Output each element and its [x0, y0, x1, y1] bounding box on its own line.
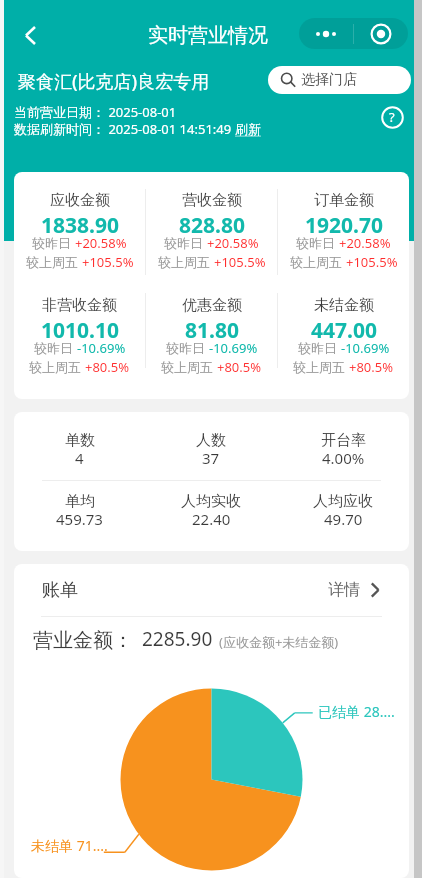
staticText: 人均应收 [313, 492, 373, 511]
staticText: 当前营业日期： 2025-08-01 [14, 103, 177, 121]
staticText: -10.69% [77, 339, 126, 357]
button[interactable]: 选择门店 [268, 66, 411, 94]
staticText: 较昨日 [298, 339, 341, 357]
staticText: 较上周五 [158, 253, 214, 271]
staticText: 已结单 28.... [318, 702, 395, 721]
staticText: +20.58% [339, 234, 391, 252]
button[interactable]: 刷新 [235, 121, 261, 137]
staticText: 828.80 [179, 211, 245, 240]
staticText: 人均实收 [181, 492, 241, 511]
staticText: 较昨日 [164, 234, 207, 252]
staticText: 选择门店 [301, 71, 357, 89]
staticText: 账单 [42, 579, 78, 601]
staticText: ? [389, 108, 395, 126]
button[interactable]: 人均应收 [277, 492, 409, 531]
staticText: 人数 [196, 431, 226, 450]
staticText: 1010.10 [41, 316, 119, 345]
staticText: 22.40 [192, 509, 231, 529]
staticText: 81.80 [185, 316, 239, 345]
staticText: 聚食汇(比克店)良宏专用 [18, 69, 210, 94]
staticText: 营业金额： [33, 628, 133, 653]
staticText: 单数 [65, 431, 95, 450]
staticText: 单均 [65, 492, 95, 511]
staticText: -10.69% [209, 339, 258, 357]
staticText: +80.5% [217, 358, 262, 376]
staticText: 1920.70 [305, 211, 383, 240]
staticText: 优惠金额 [182, 296, 242, 315]
staticText: 数据刷新时间： 2025-08-01 14:51:49 [14, 120, 235, 138]
staticText: 较昨日 [296, 234, 339, 252]
button[interactable]: 优惠金额 [146, 277, 277, 382]
staticText: +105.5% [214, 253, 266, 271]
button[interactable]: 开台率 [277, 431, 409, 470]
staticText: 37 [202, 448, 220, 468]
staticText: 应收金额 [50, 191, 110, 210]
button[interactable]: 人均实收 [145, 492, 277, 531]
button[interactable]: 详情 [328, 580, 383, 600]
staticText: 较昨日 [166, 339, 209, 357]
staticText: 较昨日 [32, 234, 75, 252]
button[interactable]: More options [299, 18, 353, 49]
staticText: 未结金额 [314, 296, 374, 315]
staticText: +80.5% [349, 358, 394, 376]
staticText: 实时营业情况 [148, 23, 268, 48]
staticText: +20.58% [207, 234, 259, 252]
staticText: 较上周五 [26, 253, 82, 271]
button[interactable]: Back [12, 18, 47, 53]
staticText: 较上周五 [29, 358, 85, 376]
staticText: -10.69% [341, 339, 390, 357]
button[interactable]: 非营收金额 [14, 277, 145, 382]
staticText: (应收金额+未结金额) [219, 633, 339, 651]
button[interactable]: 单均 [14, 492, 145, 531]
button[interactable]: 营收金额 [146, 172, 277, 277]
staticText: 459.73 [56, 509, 103, 529]
staticText: 订单金额 [314, 191, 374, 210]
button[interactable]: 订单金额 [278, 172, 409, 277]
button[interactable]: 人数 [145, 431, 277, 470]
staticText: 非营收金额 [42, 296, 117, 315]
staticText: 开台率 [321, 431, 366, 450]
staticText: 较昨日 [34, 339, 77, 357]
staticText: 较上周五 [290, 253, 346, 271]
staticText: 较上周五 [293, 358, 349, 376]
staticText: 详情 [328, 580, 360, 600]
staticText: 49.70 [324, 509, 363, 529]
staticText: 营收金额 [182, 191, 242, 210]
staticText: +20.58% [75, 234, 127, 252]
staticText: 1838.90 [41, 211, 119, 240]
button[interactable]: 应收金额 [14, 172, 145, 277]
staticText: +105.5% [346, 253, 398, 271]
staticText: +80.5% [85, 358, 130, 376]
button[interactable]: 单数 [14, 431, 145, 470]
staticText: +105.5% [82, 253, 134, 271]
staticText: 2285.90 [142, 626, 213, 652]
staticText: 4.00% [322, 448, 365, 468]
staticText: 较上周五 [161, 358, 217, 376]
button[interactable]: Close mini program [354, 18, 408, 49]
staticText: 4 [75, 448, 84, 468]
staticText: 未结单 71.... [31, 836, 108, 855]
staticText: 447.00 [311, 316, 377, 345]
button[interactable]: Help [376, 101, 408, 133]
button[interactable]: 未结金额 [278, 277, 409, 382]
